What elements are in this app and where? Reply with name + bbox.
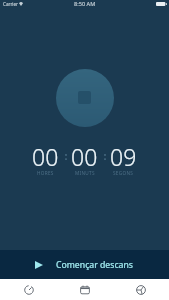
staticText: Carrier (3, 1, 18, 7)
staticText: MINUTS (75, 170, 95, 176)
staticText: 00 (32, 141, 59, 172)
staticText: HORES (37, 170, 54, 176)
button[interactable]: Timer (0, 279, 57, 300)
staticText: Començar descans (56, 259, 134, 271)
button[interactable]: Calendar (57, 279, 113, 300)
button[interactable]: Stop timer (56, 69, 114, 127)
staticText: 00 (71, 141, 98, 172)
button[interactable]: Statistics (113, 279, 169, 300)
staticText: 09 (110, 141, 137, 172)
staticText: 8:50 AM (74, 0, 96, 8)
button[interactable]: Començar descans (0, 250, 169, 279)
staticText: SEGONS (113, 170, 134, 176)
